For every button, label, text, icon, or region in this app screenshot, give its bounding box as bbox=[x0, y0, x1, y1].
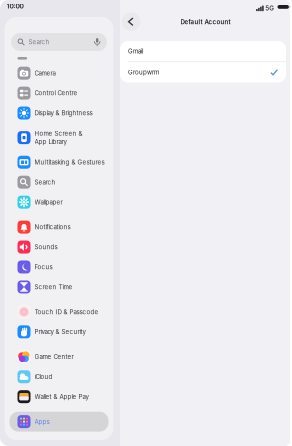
button[interactable]: Groupwrm bbox=[120, 62, 286, 82]
staticText: Notifications bbox=[34, 223, 70, 231]
staticText: Search bbox=[28, 38, 49, 46]
staticText: Apps bbox=[34, 418, 49, 425]
staticText: Multitasking & Gestures bbox=[34, 158, 104, 166]
button[interactable]: Screen Time bbox=[9, 277, 108, 297]
staticText: 5G bbox=[265, 4, 274, 12]
staticText: App Library bbox=[34, 138, 66, 145]
button[interactable]: iCloud bbox=[9, 367, 108, 387]
staticText: Default Account bbox=[180, 18, 230, 26]
staticText: Gmail bbox=[128, 47, 143, 55]
button[interactable]: Sounds bbox=[9, 237, 108, 257]
staticText: Wallpaper bbox=[34, 198, 62, 206]
button[interactable]: Home Screen & bbox=[9, 123, 108, 152]
staticText: Home Screen & bbox=[34, 130, 82, 137]
button[interactable]: Camera bbox=[9, 63, 108, 83]
staticText: Screen Time bbox=[34, 283, 72, 291]
button[interactable]: Notifications bbox=[9, 217, 108, 237]
button[interactable]: Game Center bbox=[9, 347, 108, 367]
staticText: Groupwrm bbox=[128, 69, 159, 76]
staticText: Control Centre bbox=[34, 89, 77, 97]
staticText: iCloud bbox=[34, 373, 52, 380]
staticText: Sounds bbox=[34, 243, 57, 251]
button[interactable]: Wallpaper bbox=[9, 192, 108, 212]
staticText: Camera bbox=[34, 69, 55, 77]
button[interactable]: Wallet & Apple Pay bbox=[9, 387, 108, 407]
staticText: Privacy & Security bbox=[34, 328, 85, 335]
button[interactable]: Focus bbox=[9, 257, 108, 277]
button[interactable]: Search bbox=[9, 172, 108, 192]
button[interactable]: Apps bbox=[9, 412, 108, 432]
staticText: Display & Brightness bbox=[34, 109, 92, 117]
staticText: Search bbox=[34, 178, 55, 186]
staticText: Focus bbox=[34, 263, 52, 271]
staticText: 10:00 bbox=[7, 2, 24, 10]
button[interactable]: Control Centre bbox=[9, 83, 108, 103]
staticText: Wallet & Apple Pay bbox=[34, 393, 88, 400]
button[interactable]: Display & Brightness bbox=[9, 103, 108, 123]
button[interactable]: Back bbox=[122, 12, 140, 31]
button[interactable]: Touch ID & Passcode bbox=[9, 302, 108, 322]
button[interactable]: Privacy & Security bbox=[9, 322, 108, 342]
button[interactable]: Multitasking & Gestures bbox=[9, 152, 108, 172]
staticText: Touch ID & Passcode bbox=[34, 308, 98, 316]
staticText: Game Center bbox=[34, 353, 73, 360]
button[interactable]: Gmail bbox=[120, 41, 286, 61]
